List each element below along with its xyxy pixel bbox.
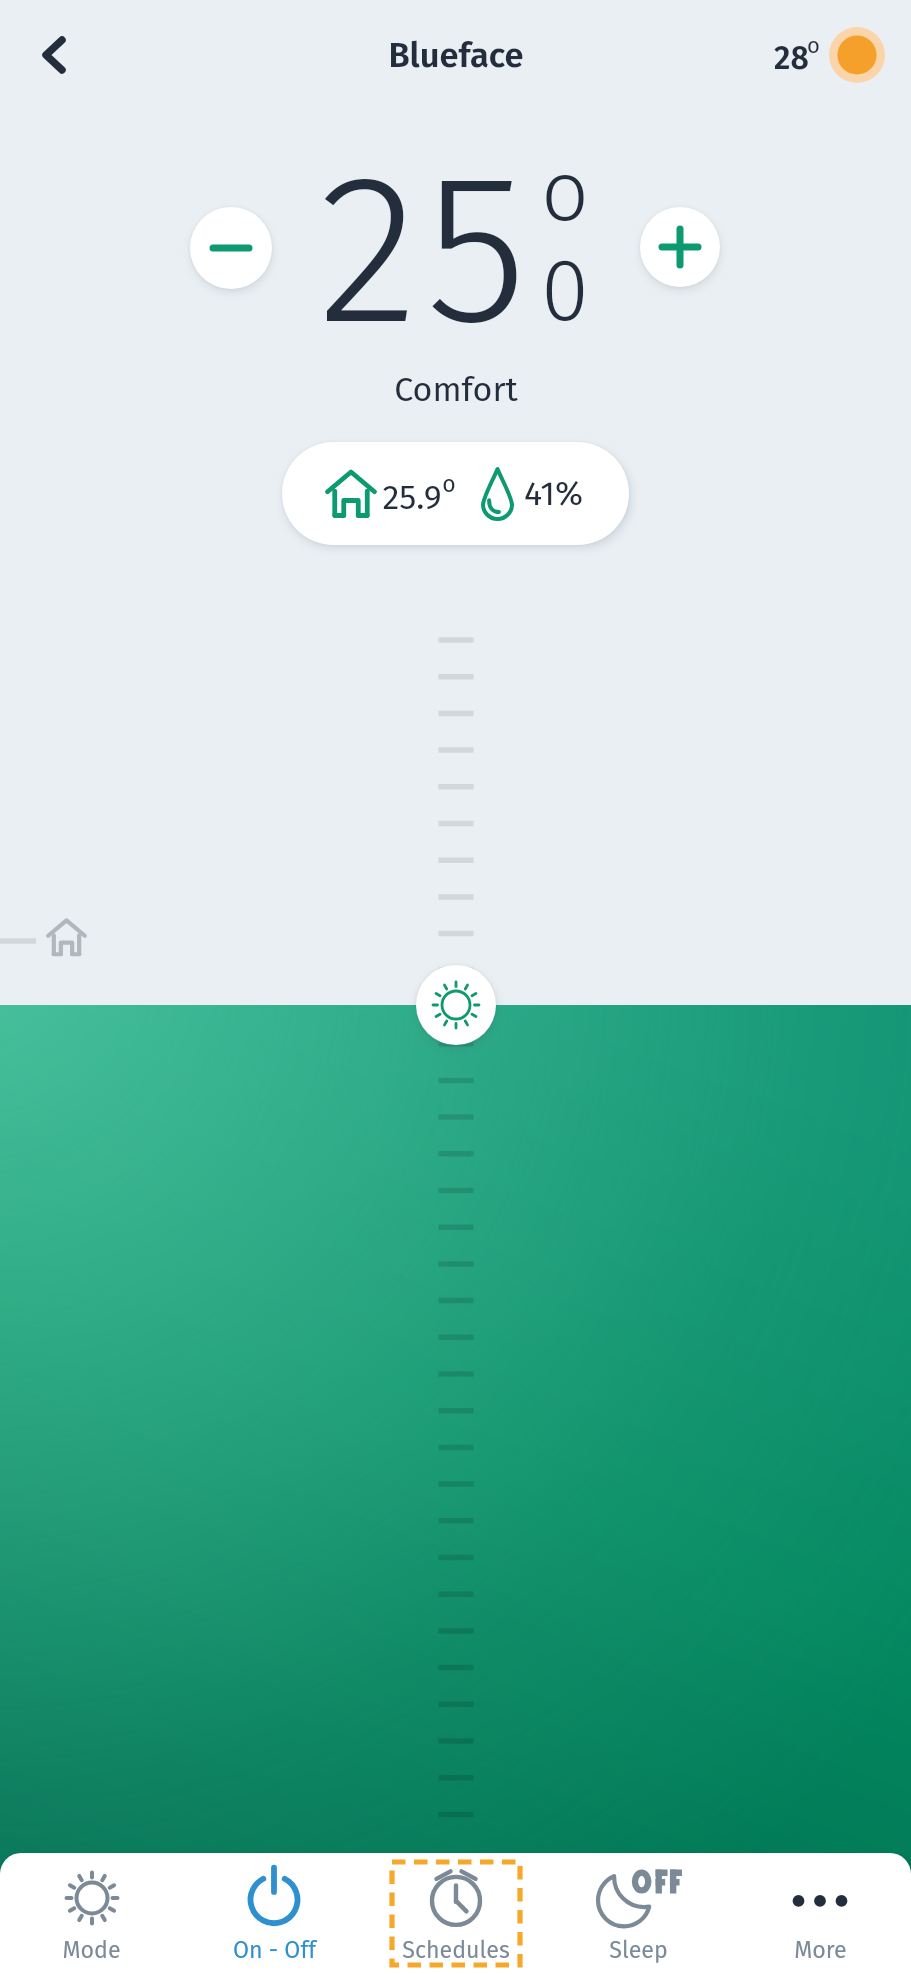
- staticText: 25: [318, 126, 534, 377]
- button[interactable]: Sleep: [574, 1862, 702, 1965]
- staticText: o: [442, 470, 456, 498]
- staticText: 41%: [524, 473, 583, 514]
- staticText: Mode: [62, 1936, 121, 1964]
- button[interactable]: More: [756, 1862, 884, 1965]
- staticText: More: [794, 1936, 847, 1964]
- staticText: o: [541, 141, 589, 242]
- button[interactable]: Back: [16, 19, 88, 91]
- staticText: Sleep: [609, 1936, 668, 1964]
- button[interactable]: Mode: [27, 1862, 156, 1965]
- button[interactable]: Increase temperature: [640, 207, 720, 287]
- button[interactable]: 25.9: [282, 442, 629, 545]
- staticText: o: [807, 32, 820, 58]
- staticText: Schedules: [402, 1936, 510, 1964]
- button[interactable]: Schedules: [392, 1862, 520, 1965]
- button[interactable]: Decrease temperature: [190, 207, 272, 289]
- button[interactable]: Temperature slider: [416, 965, 496, 1045]
- staticText: Blueface: [388, 35, 524, 76]
- staticText: 28: [774, 39, 809, 77]
- staticText: On - Off: [233, 1936, 316, 1964]
- staticText: 25.9: [382, 477, 442, 517]
- staticText: Comfort: [394, 369, 518, 410]
- button[interactable]: On - Off: [210, 1862, 338, 1965]
- staticText: 0: [541, 239, 589, 343]
